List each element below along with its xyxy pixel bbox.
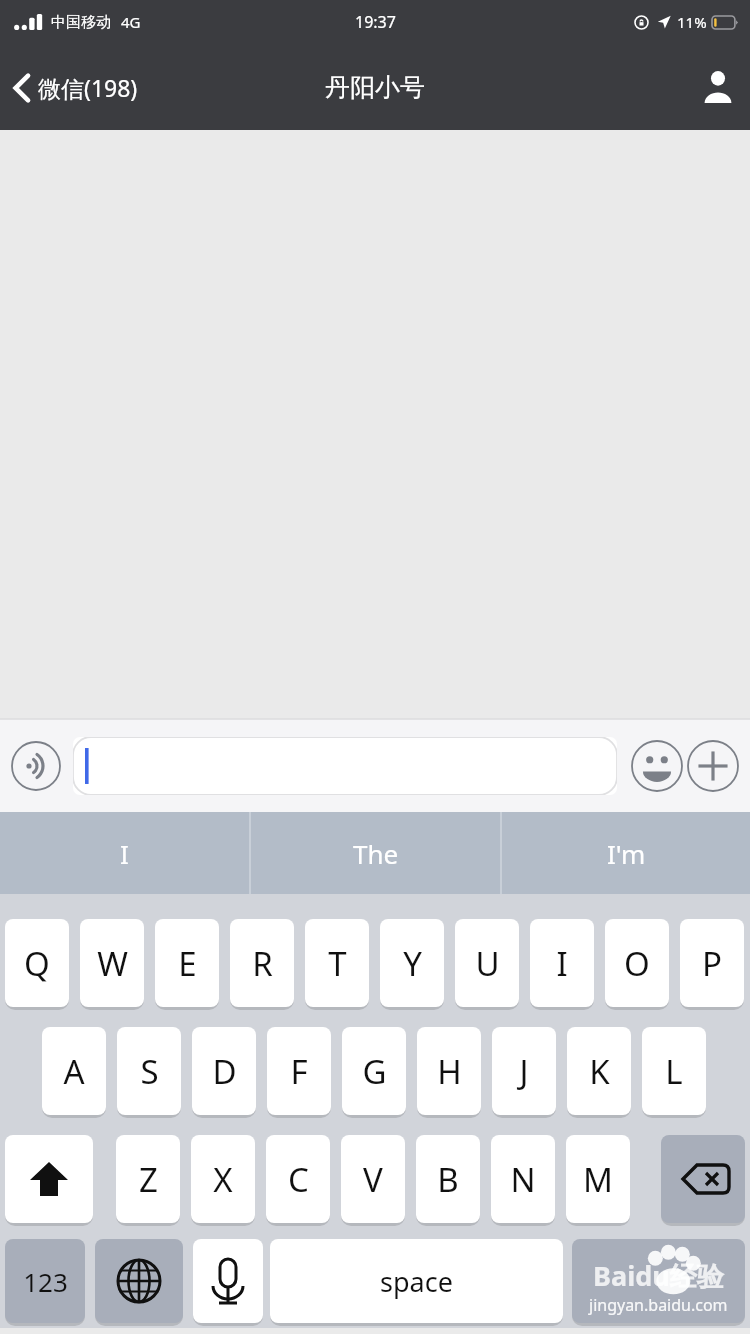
- staticText: J: [519, 1049, 529, 1094]
- staticText: K: [589, 1049, 610, 1094]
- button[interactable]: The: [251, 812, 500, 894]
- staticText: L: [665, 1049, 683, 1094]
- button[interactable]: Y: [380, 919, 444, 1007]
- button[interactable]: N: [491, 1135, 555, 1223]
- button[interactable]: Voice message: [11, 741, 61, 791]
- staticText: Baidu经验: [593, 1257, 724, 1294]
- button[interactable]: 微信(198): [0, 64, 148, 111]
- staticText: E: [178, 941, 197, 986]
- button[interactable]: M: [566, 1135, 630, 1223]
- button[interactable]: Shift: [5, 1135, 93, 1223]
- button[interactable]: Return: [572, 1239, 745, 1323]
- button[interactable]: P: [680, 919, 744, 1007]
- button[interactable]: Switch keyboard: [95, 1239, 183, 1323]
- staticText: I: [556, 941, 568, 986]
- staticText: 11%: [677, 12, 707, 32]
- button[interactable]: I: [0, 812, 249, 894]
- button[interactable]: I: [530, 919, 594, 1007]
- button[interactable]: U: [455, 919, 519, 1007]
- staticText: 19:37: [355, 11, 396, 33]
- button[interactable]: Z: [116, 1135, 180, 1223]
- button[interactable]: E: [155, 919, 219, 1007]
- button[interactable]: W: [80, 919, 144, 1007]
- staticText: N: [510, 1157, 536, 1202]
- staticText: Q: [24, 941, 50, 986]
- staticText: F: [290, 1049, 308, 1094]
- button[interactable]: S: [117, 1027, 181, 1115]
- button[interactable]: H: [417, 1027, 481, 1115]
- button[interactable]: K: [567, 1027, 631, 1115]
- staticText: U: [475, 941, 500, 986]
- staticText: 4G: [121, 12, 141, 32]
- button[interactable]: Backspace: [661, 1135, 745, 1223]
- button[interactable]: Q: [5, 919, 69, 1007]
- staticText: P: [702, 941, 722, 986]
- button[interactable]: F: [267, 1027, 331, 1115]
- button[interactable]: Contact profile: [686, 59, 750, 115]
- button[interactable]: space: [270, 1239, 563, 1323]
- button[interactable]: X: [191, 1135, 255, 1223]
- button[interactable]: C: [266, 1135, 330, 1223]
- staticText: The: [353, 836, 399, 871]
- button[interactable]: O: [605, 919, 669, 1007]
- button[interactable]: Emoji: [631, 740, 683, 792]
- staticText: D: [212, 1049, 237, 1094]
- button[interactable]: G: [342, 1027, 406, 1115]
- staticText: Z: [139, 1157, 158, 1202]
- staticText: G: [362, 1049, 387, 1094]
- button[interactable]: D: [192, 1027, 256, 1115]
- staticText: M: [583, 1157, 613, 1202]
- button[interactable]: J: [492, 1027, 556, 1115]
- staticText: H: [437, 1049, 462, 1094]
- button[interactable]: R: [230, 919, 294, 1007]
- staticText: 丹阳小号: [325, 72, 425, 103]
- staticText: I: [120, 836, 129, 871]
- button[interactable]: T: [305, 919, 369, 1007]
- button[interactable]: A: [42, 1027, 106, 1115]
- button[interactable]: B: [416, 1135, 480, 1223]
- staticText: 中国移动: [51, 13, 111, 32]
- button[interactable]: L: [642, 1027, 706, 1115]
- button[interactable]: Voice input: [193, 1239, 263, 1323]
- staticText: C: [288, 1157, 309, 1202]
- staticText: 微信(198): [38, 72, 138, 103]
- staticText: T: [328, 941, 347, 986]
- staticText: jingyan.baidu.com: [589, 1294, 728, 1316]
- button[interactable]: More options: [687, 740, 739, 792]
- button[interactable]: 123: [5, 1239, 85, 1323]
- button[interactable]: [73, 737, 617, 795]
- staticText: W: [97, 941, 128, 986]
- staticText: A: [63, 1049, 85, 1094]
- staticText: 123: [23, 1264, 68, 1299]
- staticText: I'm: [607, 836, 646, 871]
- staticText: Y: [403, 941, 422, 986]
- staticText: B: [437, 1157, 459, 1202]
- staticText: V: [363, 1157, 383, 1202]
- staticText: R: [252, 941, 273, 986]
- staticText: S: [140, 1049, 159, 1094]
- staticText: O: [624, 941, 650, 986]
- staticText: X: [213, 1157, 233, 1202]
- button[interactable]: V: [341, 1135, 405, 1223]
- button[interactable]: I'm: [502, 812, 750, 894]
- staticText: space: [380, 1263, 453, 1300]
